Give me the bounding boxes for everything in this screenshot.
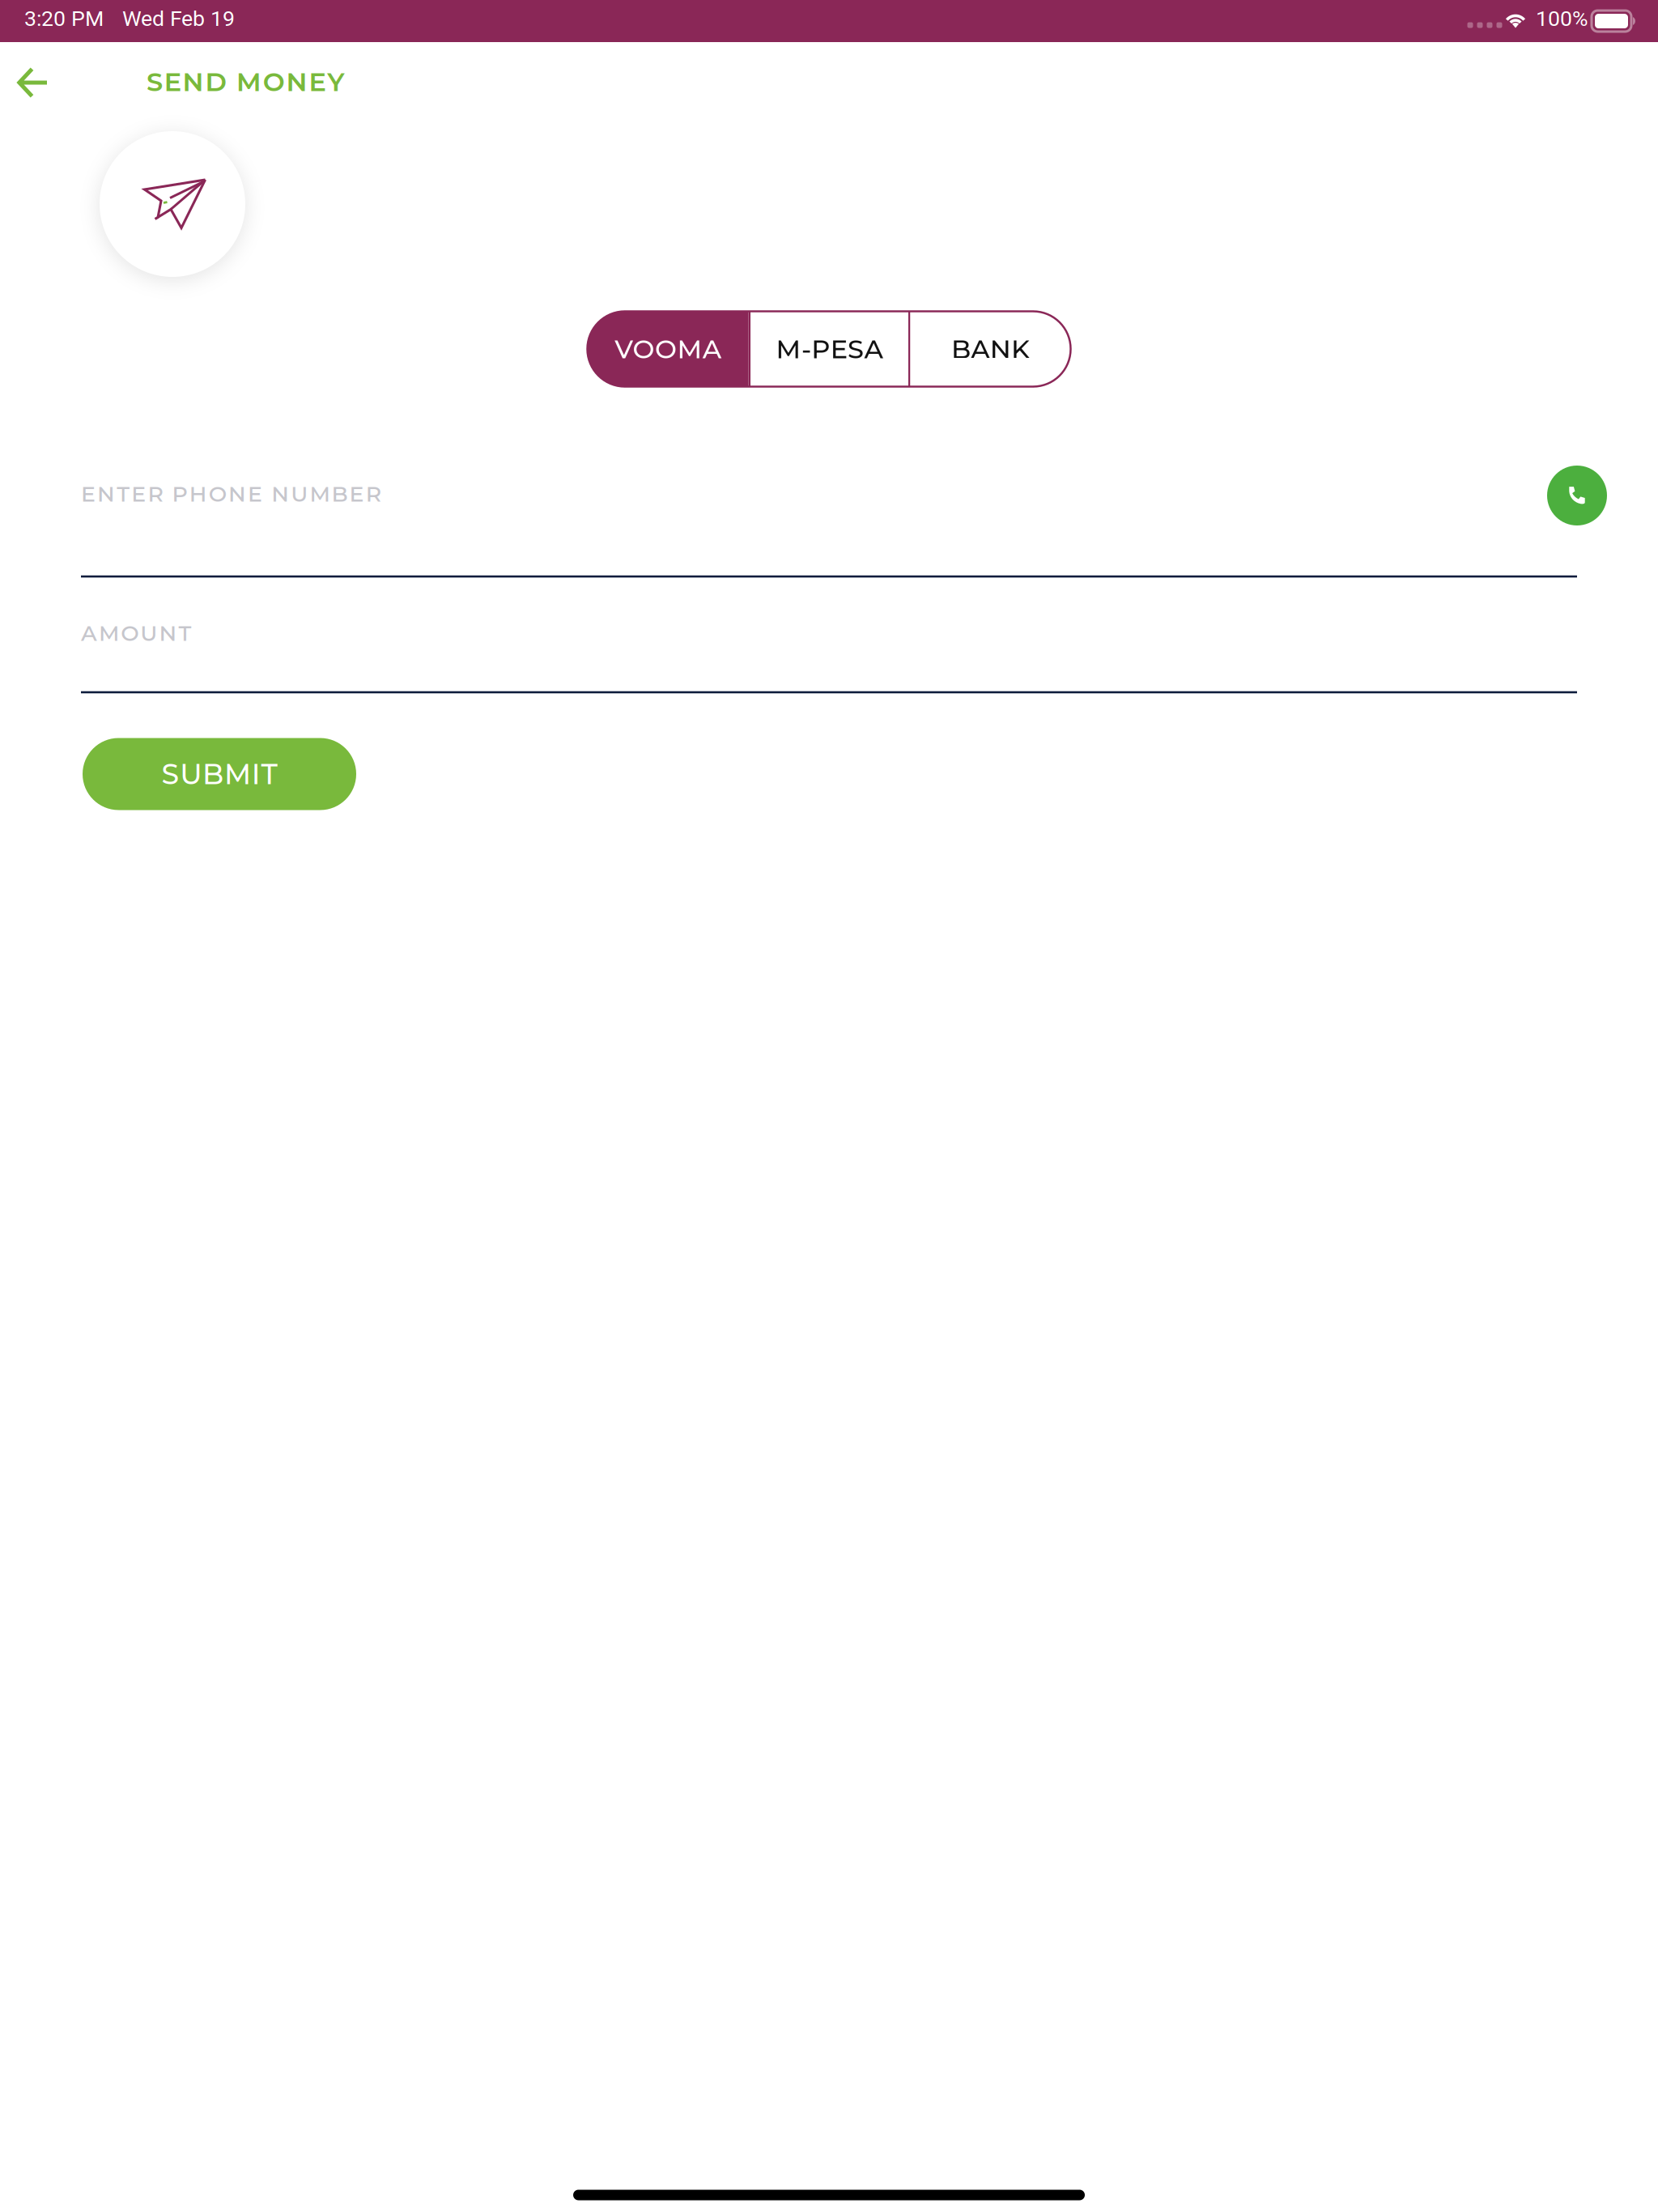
staticText: SEND MONEY <box>147 66 344 98</box>
staticText: BANK <box>951 333 1030 365</box>
staticText: Wed Feb 19 <box>122 6 235 31</box>
staticText: ENTER PHONE NUMBER <box>81 481 381 507</box>
staticText: AMOUNT <box>81 620 191 646</box>
button[interactable]: M-PESA <box>750 311 908 387</box>
staticText: SUBMIT <box>162 757 277 791</box>
button[interactable]: Pick contact <box>1547 466 1607 525</box>
staticText: 100% <box>1536 6 1588 31</box>
staticText: VOOMA <box>615 333 721 365</box>
button[interactable]: Back <box>1 55 66 110</box>
button[interactable]: BANK <box>910 311 1071 387</box>
staticText: 3:20 PM <box>24 6 104 31</box>
staticText: M-PESA <box>776 333 883 365</box>
button[interactable]: SEND MONEY <box>147 61 360 103</box>
button[interactable]: VOOMA <box>587 311 748 387</box>
button[interactable]: SUBMIT <box>83 738 356 810</box>
